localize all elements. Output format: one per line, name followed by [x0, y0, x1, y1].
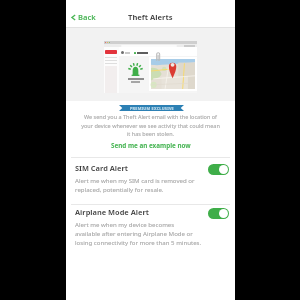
button[interactable]: Toggle alert	[208, 164, 229, 175]
button[interactable]: Toggle alert	[208, 208, 229, 219]
staticText: Alert me when my device becomes availabl…	[75, 220, 202, 247]
staticText: SIM Card Alert	[75, 163, 128, 173]
staticText: PREMIUM EXCLUSIVE	[130, 106, 174, 111]
staticText: Back	[78, 12, 96, 22]
button[interactable]: Back	[70, 12, 96, 22]
staticText: Theft Alerts	[128, 12, 173, 22]
staticText: Alert me when my SIM card is removed or …	[75, 176, 195, 194]
button[interactable]: Send me an example now	[109, 140, 193, 151]
button[interactable]: SIM Card Alert	[66, 161, 235, 196]
staticText: Send me an example now	[111, 141, 191, 150]
staticText: We send you a Theft Alert email with the…	[79, 113, 222, 137]
button[interactable]: Airplane Mode Alert	[66, 205, 235, 249]
staticText: Airplane Mode Alert	[75, 207, 149, 217]
